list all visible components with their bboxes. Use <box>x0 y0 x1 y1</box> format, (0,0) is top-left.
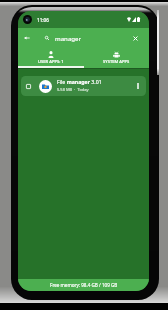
button[interactable]: Back <box>19 30 35 46</box>
button[interactable]: SYSTEM APPS <box>83 48 149 68</box>
staticText: Free memory: 98.4 GB / 109 GB <box>50 282 118 288</box>
staticText: manager <box>55 34 82 42</box>
staticText: SYSTEM APPS <box>103 59 130 65</box>
button[interactable]: USER APPS: 1 <box>18 48 83 68</box>
staticText: USER APPS: 1 <box>38 59 64 65</box>
button[interactable]: File manager 3.01 <box>21 76 146 96</box>
staticText: File manager 3.01 <box>57 78 102 85</box>
button[interactable]: More options <box>132 80 144 92</box>
staticText: 11:06 <box>37 17 49 23</box>
button[interactable]: Clear search <box>127 30 143 46</box>
staticText: 5.58 MB · Today <box>57 87 89 92</box>
